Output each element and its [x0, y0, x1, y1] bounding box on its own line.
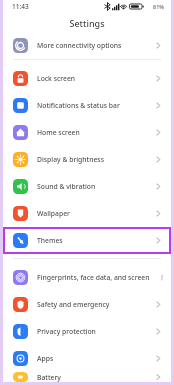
staticText: More connectivity options [37, 41, 122, 50]
button[interactable]: Safety and emergency [3, 291, 171, 318]
button[interactable]: Apps [3, 345, 171, 372]
staticText: Notifications & status bar [37, 101, 120, 110]
button[interactable]: Fingerprints, face data, and screen lock [3, 264, 171, 291]
staticText: 81% [153, 3, 164, 10]
staticText: Battery [37, 373, 61, 382]
button[interactable]: Notifications & status bar [3, 92, 171, 119]
button[interactable]: Sound & vibration [3, 173, 171, 200]
button[interactable]: More connectivity options [3, 32, 171, 59]
button[interactable]: Home screen [3, 119, 171, 146]
staticText: Themes [37, 236, 63, 245]
staticText: Apps [37, 354, 54, 363]
button[interactable]: Privacy protection [3, 318, 171, 345]
button[interactable]: Battery [3, 372, 171, 382]
staticText: Safety and emergency [37, 300, 110, 309]
staticText: Settings [69, 17, 105, 29]
staticText: Fingerprints, face data, and screen lock [37, 273, 162, 282]
staticText: Display & brightness [37, 155, 104, 164]
button[interactable]: Lock screen [3, 65, 171, 92]
staticText: Wallpaper [37, 209, 70, 218]
staticText: Sound & vibration [37, 182, 96, 191]
button[interactable]: Wallpaper [3, 200, 171, 227]
button[interactable]: Themes [3, 227, 171, 254]
button[interactable]: Display & brightness [3, 146, 171, 173]
staticText: Privacy protection [37, 327, 96, 336]
staticText: Home screen [37, 128, 80, 137]
staticText: Lock screen [37, 74, 76, 83]
staticText: 11:43 [12, 2, 29, 11]
